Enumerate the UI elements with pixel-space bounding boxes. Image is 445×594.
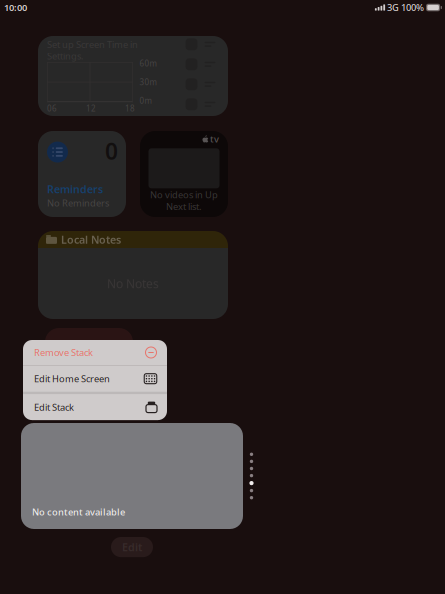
button[interactable]: Edit Stack — [23, 394, 167, 420]
staticText: 3G 100% — [385, 1, 426, 14]
staticText: No Reminders — [47, 197, 109, 209]
staticText: 06 — [47, 103, 57, 114]
staticText: 0m — [139, 95, 151, 106]
button[interactable]: Edit Home Screen — [23, 366, 167, 392]
staticText: 12 — [86, 103, 96, 114]
staticText: No videos in Up — [150, 188, 218, 201]
staticText: Next list. — [166, 200, 202, 213]
staticText: No Notes — [107, 275, 159, 291]
staticText: 10:00 — [4, 1, 27, 14]
staticText: tv — [210, 133, 219, 145]
staticText: Settings. — [47, 50, 84, 62]
staticText: Edit — [122, 540, 142, 554]
staticText: Local Notes — [61, 232, 121, 247]
staticText: 0 — [105, 136, 118, 166]
staticText: 18 — [125, 103, 135, 114]
staticText: 60m — [139, 58, 156, 69]
staticText: No content available — [32, 506, 125, 518]
button[interactable]: Remove Stack — [23, 340, 167, 365]
staticText: Edit Stack — [34, 401, 74, 413]
button[interactable]: Edit — [111, 537, 153, 557]
staticText: Reminders — [47, 182, 103, 196]
staticText: Remove Stack — [34, 346, 93, 359]
staticText: Edit Home Screen — [34, 372, 110, 385]
staticText: 30m — [139, 77, 156, 87]
staticText: Set up Screen Time in — [47, 38, 138, 51]
